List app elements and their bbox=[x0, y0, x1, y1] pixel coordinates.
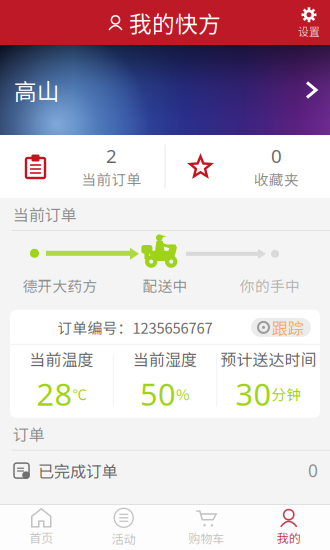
button[interactable]: 首页 bbox=[0, 505, 82, 550]
staticText: 0 bbox=[308, 459, 318, 482]
staticText: % bbox=[176, 383, 190, 404]
button[interactable]: 活动 bbox=[82, 505, 165, 550]
staticText: 2 bbox=[106, 143, 117, 168]
staticText: 分钟 bbox=[272, 383, 302, 404]
button[interactable]: 设置 bbox=[288, 0, 330, 45]
staticText: 我的快方 bbox=[129, 6, 221, 39]
button[interactable]: 高山 bbox=[0, 45, 330, 135]
button[interactable]: 已完成订单 bbox=[0, 451, 330, 491]
staticText: 当前订单 bbox=[81, 168, 141, 189]
staticText: 活动 bbox=[112, 530, 136, 547]
button[interactable]: 0 bbox=[165, 135, 329, 198]
staticText: 跟踪 bbox=[272, 316, 304, 339]
staticText: 购物车 bbox=[188, 529, 224, 547]
staticText: 当前订单 bbox=[13, 202, 77, 226]
staticText: 50 bbox=[140, 373, 176, 414]
staticText: 首页 bbox=[29, 529, 53, 546]
staticText: 你的手中 bbox=[240, 275, 300, 296]
staticText: 德开大药方 bbox=[22, 275, 97, 296]
button[interactable]: 我的 bbox=[247, 505, 330, 550]
staticText: 我的 bbox=[277, 529, 301, 546]
button[interactable]: 2 bbox=[0, 135, 164, 198]
button[interactable]: 购物车 bbox=[165, 505, 247, 550]
staticText: 收藏夹 bbox=[254, 168, 299, 189]
staticText: 当前温度 bbox=[29, 347, 93, 370]
staticText: 已完成订单 bbox=[38, 459, 118, 482]
staticText: 设置 bbox=[298, 23, 320, 39]
staticText: 订单编号：1235656767 bbox=[57, 317, 212, 338]
staticText: 28 bbox=[36, 373, 72, 414]
staticText: 订单 bbox=[13, 422, 45, 445]
staticText: 高山 bbox=[14, 74, 60, 106]
button[interactable]: 跟踪 bbox=[251, 318, 311, 337]
staticText: 30 bbox=[236, 373, 272, 414]
staticText: 当前湿度 bbox=[133, 347, 197, 370]
staticText: 配送中 bbox=[142, 275, 187, 296]
staticText: 0 bbox=[271, 143, 282, 168]
staticText: 预计送达时间 bbox=[221, 347, 317, 370]
staticText: °C bbox=[72, 383, 86, 404]
